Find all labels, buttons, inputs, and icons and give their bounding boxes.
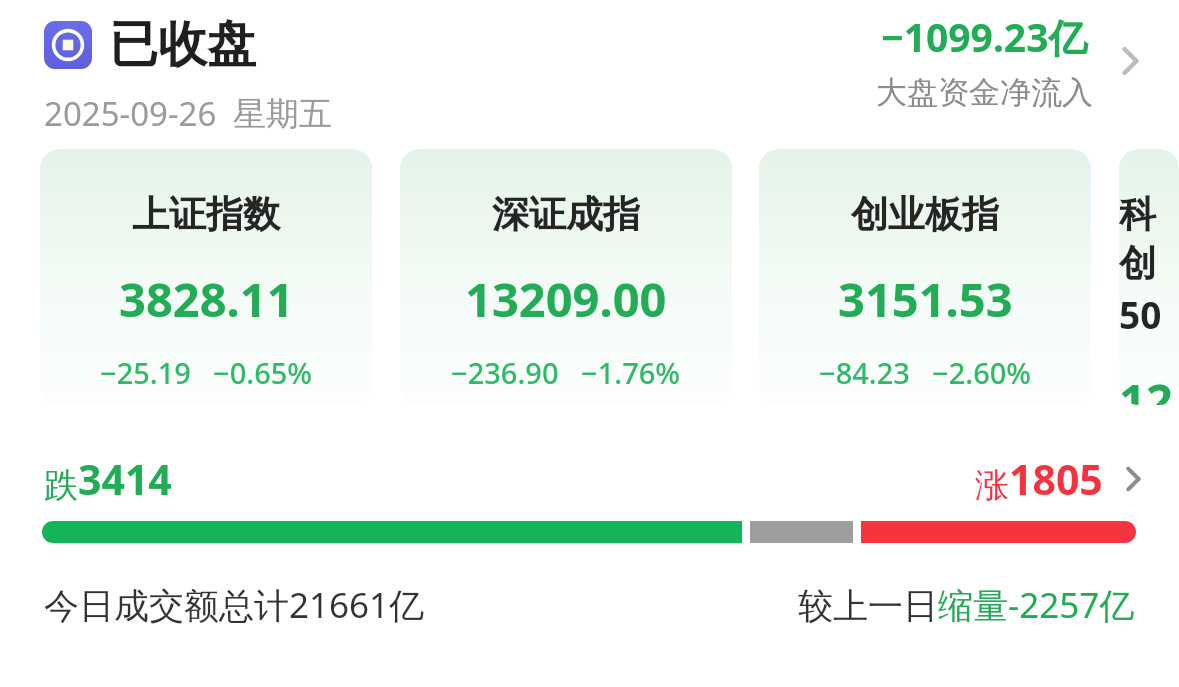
staticText: −2.60% — [932, 353, 1032, 392]
button[interactable]: 上证指数 — [40, 149, 372, 405]
staticText: 3151.53 — [838, 267, 1013, 331]
staticText: 涨 — [975, 464, 1009, 507]
staticText: 深证成指 — [492, 191, 640, 238]
other: 涨跌家数详情 — [1113, 459, 1153, 499]
staticText: −1.76% — [581, 353, 681, 392]
staticText: −1099.23亿 — [881, 10, 1088, 63]
button[interactable]: 深证成指 — [400, 149, 732, 405]
staticText: −236.90 — [451, 353, 559, 392]
button[interactable]: −1099.23亿 — [876, 10, 1153, 112]
staticText: 创业板指 — [851, 191, 999, 238]
staticText: 今日成交额总计21661亿 — [44, 581, 425, 629]
staticText: −84.23 — [819, 353, 910, 392]
button[interactable]: 跌 — [44, 451, 1153, 507]
staticText: 3414 — [78, 451, 172, 507]
staticText: 跌 — [44, 464, 78, 507]
other: 大盘资金净流入详情 — [1107, 38, 1153, 84]
staticText: 大盘资金净流入 — [876, 73, 1093, 112]
staticText: 星期五 — [233, 93, 332, 135]
staticText: 2025-09-26 — [44, 91, 217, 136]
staticText: 上证指数 — [132, 191, 280, 238]
staticText: −0.65% — [213, 353, 313, 392]
staticText: 较上一日缩量-2257亿 — [798, 581, 1135, 629]
staticText: 已收盘 — [109, 14, 256, 76]
staticText: 1805 — [1009, 451, 1103, 507]
button[interactable]: 科创50 — [1119, 149, 1179, 405]
staticText: 科创50 — [1119, 191, 1179, 339]
staticText: −25.19 — [100, 353, 191, 392]
staticText: 3828.11 — [119, 267, 294, 331]
staticText: 13209.00 — [465, 267, 667, 331]
staticText: 1290.00 — [1119, 368, 1179, 405]
button[interactable]: 创业板指 — [759, 149, 1091, 405]
